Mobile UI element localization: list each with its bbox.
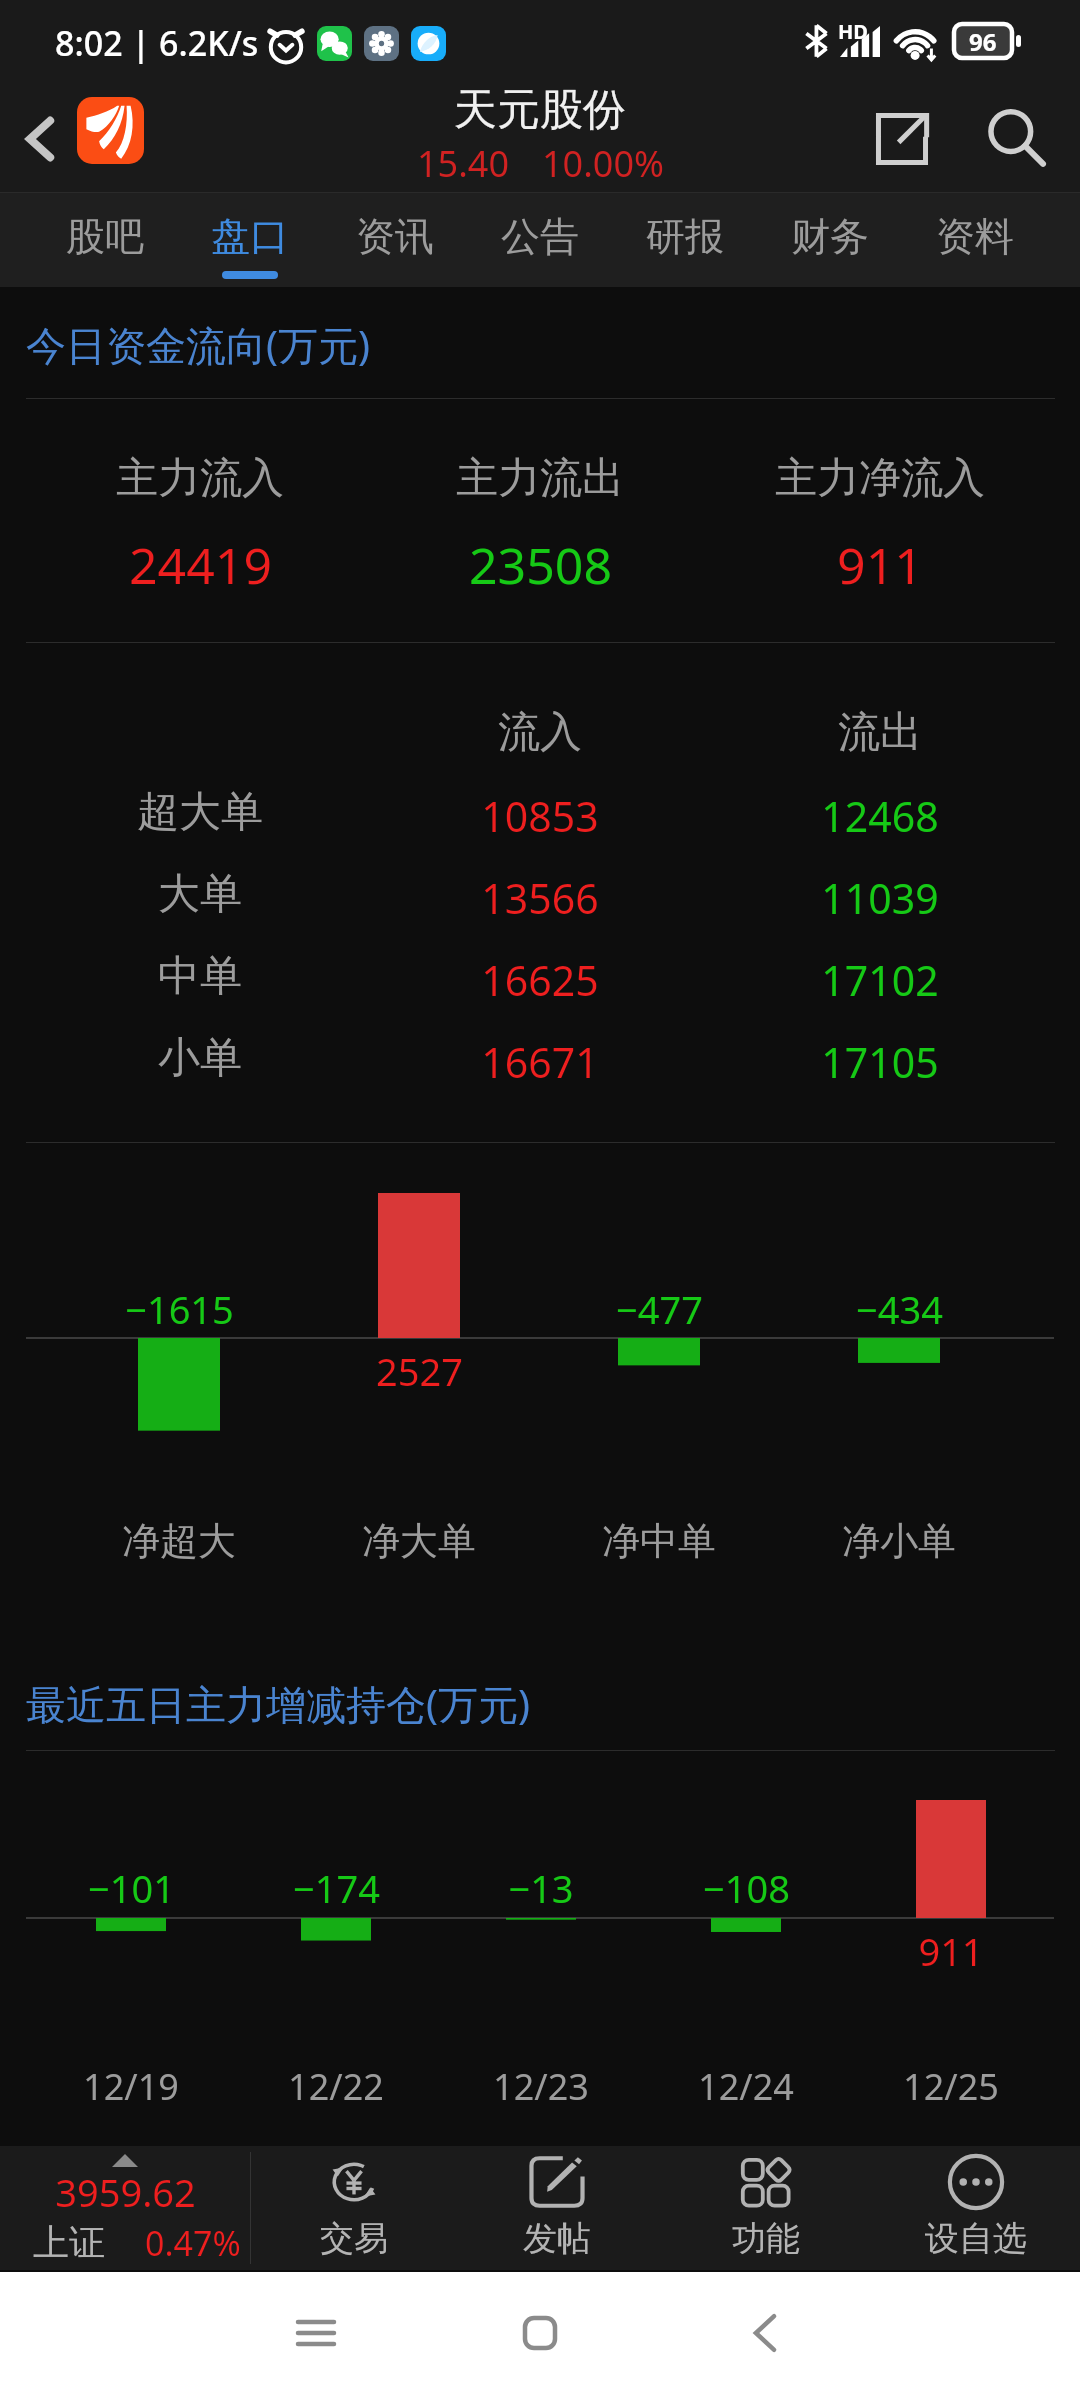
staticText: 小单 <box>158 1032 242 1085</box>
staticText: 设自选 <box>925 2217 1027 2260</box>
staticText: 16671 <box>481 1034 599 1090</box>
staticText: 发帖 <box>523 2217 591 2260</box>
button[interactable]: 功能 <box>666 2146 866 2270</box>
staticText: −101 <box>88 1862 175 1914</box>
staticText: HD <box>838 18 868 45</box>
staticText: −13 <box>508 1862 574 1914</box>
staticText: 盘口 <box>211 212 289 261</box>
staticText: 研报 <box>646 212 724 261</box>
staticText: 12/25 <box>903 2062 999 2111</box>
staticText: 12/22 <box>288 2062 384 2111</box>
staticText: 96 <box>969 25 997 58</box>
staticText: 17105 <box>821 1034 939 1090</box>
staticText: 公告 <box>501 212 579 261</box>
button[interactable]: App home <box>77 97 144 164</box>
staticText: 大单 <box>158 868 242 921</box>
staticText: 资讯 <box>356 212 434 261</box>
staticText: 最近五日主力增减持仓(万元) <box>26 1676 530 1731</box>
staticText: 13566 <box>481 870 599 926</box>
staticText: 10.00% <box>542 139 664 188</box>
button[interactable]: Shanghai index <box>0 2146 250 2270</box>
staticText: 中单 <box>158 950 242 1003</box>
staticText: 主力净流入 <box>775 452 985 505</box>
staticText: 今日资金流向(万元) <box>26 317 370 372</box>
button[interactable]: Back <box>8 85 74 192</box>
button[interactable]: Share <box>862 99 942 179</box>
button[interactable]: Home <box>485 2272 595 2400</box>
staticText: 净超大 <box>122 1517 236 1565</box>
staticText: 流入 <box>498 706 582 759</box>
staticText: −1615 <box>125 1283 234 1335</box>
staticText: 交易 <box>320 2217 388 2260</box>
staticText: 8:02 | 6.2K/s <box>55 20 259 66</box>
staticText: −434 <box>856 1283 943 1335</box>
staticText: 股吧 <box>66 212 144 261</box>
staticText: −174 <box>293 1862 380 1914</box>
staticText: 流出 <box>838 706 922 759</box>
button[interactable]: 财务 <box>758 192 902 288</box>
staticText: 12/19 <box>83 2062 179 2111</box>
staticText: 上证 <box>33 2220 105 2265</box>
staticText: 24419 <box>129 531 272 599</box>
staticText: 主力流入 <box>116 452 284 505</box>
button[interactable]: 盘口 <box>178 192 322 288</box>
staticText: 10853 <box>481 788 599 844</box>
staticText: 净大单 <box>362 1517 476 1565</box>
button[interactable]: 设自选 <box>876 2146 1076 2270</box>
button[interactable]: Back <box>710 2272 820 2400</box>
staticText: 财务 <box>791 212 869 261</box>
button[interactable]: 公告 <box>468 192 612 288</box>
button[interactable]: 资料 <box>903 192 1047 288</box>
button[interactable]: 资讯 <box>323 192 467 288</box>
staticText: 3959.62 <box>55 2166 196 2218</box>
staticText: −477 <box>616 1283 703 1335</box>
staticText: 12468 <box>821 788 939 844</box>
staticText: 2527 <box>376 1345 463 1397</box>
staticText: −108 <box>703 1862 790 1914</box>
staticText: 911 <box>837 531 923 599</box>
staticText: 0.47% <box>145 2220 241 2266</box>
staticText: 天元股份 <box>454 83 626 137</box>
staticText: 911 <box>918 1925 984 1977</box>
staticText: 净中单 <box>602 1517 716 1565</box>
button[interactable]: 研报 <box>613 192 757 288</box>
staticText: 15.40 <box>417 139 510 188</box>
staticText: 17102 <box>821 952 939 1008</box>
button[interactable]: 发帖 <box>457 2146 657 2270</box>
button[interactable]: 交易 <box>254 2146 454 2270</box>
staticText: 11039 <box>821 870 939 926</box>
staticText: 12/23 <box>493 2062 589 2111</box>
staticText: 功能 <box>732 2217 800 2260</box>
button[interactable]: Recents <box>261 2272 371 2400</box>
button[interactable]: Search <box>977 99 1057 179</box>
staticText: 16625 <box>481 952 599 1008</box>
staticText: 净小单 <box>842 1517 956 1565</box>
staticText: 资料 <box>936 212 1014 261</box>
button[interactable]: 股吧 <box>33 192 177 288</box>
staticText: 主力流出 <box>456 452 624 505</box>
staticText: 23508 <box>469 531 612 599</box>
staticText: 超大单 <box>137 786 263 839</box>
staticText: 12/24 <box>698 2062 794 2111</box>
